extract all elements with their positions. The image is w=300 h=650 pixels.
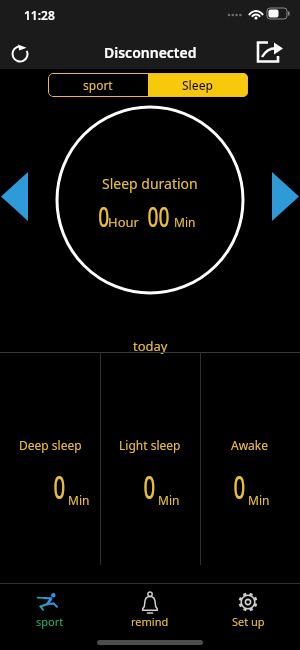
button[interactable]: sport xyxy=(48,73,148,97)
button[interactable] xyxy=(254,38,288,66)
staticText: Sleep xyxy=(182,77,214,93)
staticText: Min xyxy=(68,492,90,508)
staticText: Min xyxy=(158,492,180,508)
button[interactable]: Set up xyxy=(208,584,288,632)
staticText: Sleep duration xyxy=(102,174,198,193)
staticText: Min xyxy=(174,214,196,230)
staticText: sport xyxy=(83,77,113,93)
staticText: remind xyxy=(131,614,169,629)
staticText: 0 xyxy=(234,464,245,509)
staticText: 00 xyxy=(147,198,169,235)
staticText: 0 xyxy=(144,464,155,509)
staticText: Set up xyxy=(232,614,265,629)
staticText: 0 xyxy=(98,198,110,235)
button[interactable]: Sleep xyxy=(148,73,248,97)
button[interactable]: remind xyxy=(110,584,190,632)
staticText: Disconnected xyxy=(104,43,197,62)
staticText: Light sleep xyxy=(119,437,181,453)
staticText: Deep sleep xyxy=(19,437,82,453)
staticText: Awake xyxy=(231,437,269,453)
staticText: Min xyxy=(248,492,270,508)
staticText: sport xyxy=(36,614,64,629)
button[interactable] xyxy=(8,40,34,66)
staticText: today xyxy=(133,337,168,355)
staticText: 0 xyxy=(54,464,65,509)
button[interactable] xyxy=(0,170,30,223)
staticText: 11:28 xyxy=(24,7,55,23)
button[interactable] xyxy=(270,170,300,223)
button[interactable]: sport xyxy=(10,584,90,632)
staticText: Hour xyxy=(108,213,139,231)
